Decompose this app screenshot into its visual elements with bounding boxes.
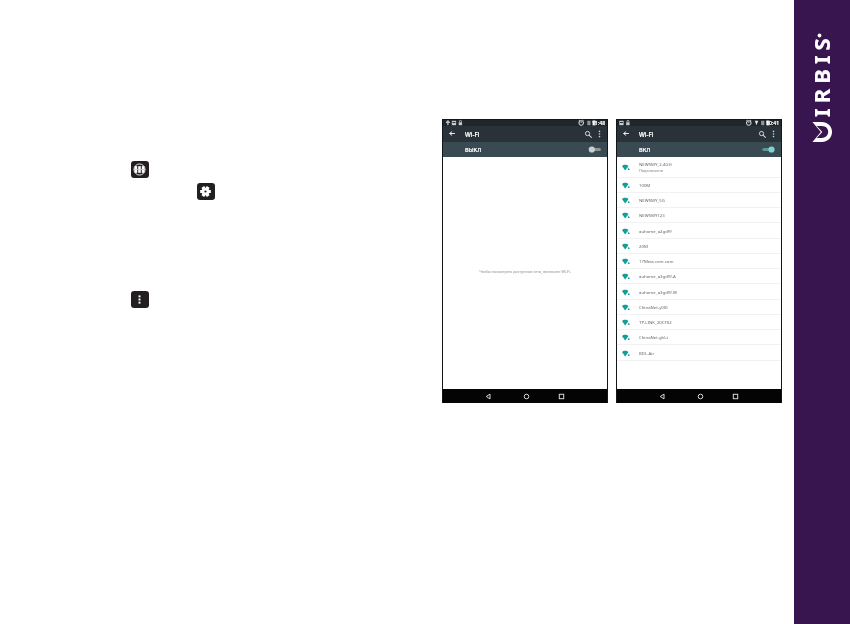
- button[interactable]: Home: [505, 389, 547, 403]
- staticText: 100M: [639, 182, 651, 188]
- staticText: Подключено: [639, 168, 664, 173]
- button[interactable]: ChinaNet.ghLt: [617, 330, 781, 344]
- button[interactable]: Turn off Wi-Fi: [757, 142, 781, 157]
- staticText: Wi-Fi: [639, 130, 654, 138]
- button[interactable]: 17Meia.com.com: [617, 254, 781, 268]
- staticText: BDL-Air: [639, 350, 655, 356]
- staticText: ChinaNet-y00I: [639, 304, 668, 310]
- button[interactable]: Recent apps: [540, 389, 582, 403]
- button[interactable]: Apps: [131, 161, 149, 178]
- button[interactable]: Settings: [197, 183, 215, 200]
- button[interactable]: ChinaNet-y00I: [617, 300, 781, 314]
- button[interactable]: More options: [131, 291, 149, 308]
- staticText: ВЫКЛ: [465, 146, 482, 154]
- staticText: Чтобы посмотреть доступные сети, включит…: [479, 269, 571, 274]
- button[interactable]: NEWSMY_5G: [617, 193, 781, 207]
- button[interactable]: Back: [641, 389, 683, 403]
- button[interactable]: Back: [443, 126, 460, 142]
- staticText: IRBIS: [806, 33, 836, 117]
- button[interactable]: BDL-Air: [617, 345, 781, 360]
- staticText: ChinaNet.ghLt: [639, 334, 669, 340]
- button[interactable]: Recent apps: [714, 389, 756, 403]
- button[interactable]: auhome_a3gdYf-A: [617, 269, 781, 283]
- button[interactable]: TP-LINK_20CF02: [617, 315, 781, 329]
- button[interactable]: Back: [467, 389, 509, 403]
- staticText: NEWSMY_2.4GH: [639, 161, 672, 167]
- staticText: TP-LINK_20CF02: [639, 319, 672, 325]
- staticText: auhome_a2gdYf: [639, 228, 672, 234]
- button[interactable]: auhome_a2gdYf: [617, 223, 781, 238]
- button[interactable]: More options: [769, 126, 778, 142]
- staticText: 11:48: [592, 120, 606, 126]
- button[interactable]: Search: [753, 126, 766, 142]
- button[interactable]: Back: [617, 126, 634, 142]
- staticText: NEWSMY_5G: [639, 197, 665, 203]
- button[interactable]: 100M: [617, 178, 781, 192]
- button[interactable]: 20M: [617, 239, 781, 253]
- button[interactable]: More options: [595, 126, 604, 142]
- staticText: 10:41: [766, 120, 780, 126]
- staticText: 17Meia.com.com: [639, 258, 674, 264]
- button[interactable]: auhome_a3gdYf-W: [617, 284, 781, 299]
- button[interactable]: NEWSMY_2.4GH: [617, 157, 781, 177]
- button[interactable]: Search: [579, 126, 592, 142]
- staticText: auhome_a3gdYf-A: [639, 273, 676, 279]
- button[interactable]: Home: [679, 389, 721, 403]
- staticText: 20M: [639, 243, 648, 249]
- button[interactable]: Turn on Wi-Fi: [583, 142, 607, 157]
- button[interactable]: NEWSMY123: [617, 208, 781, 222]
- staticText: NEWSMY123: [639, 212, 665, 218]
- staticText: auhome_a3gdYf-W: [639, 289, 678, 295]
- staticText: ВКЛ: [639, 146, 651, 154]
- staticText: Wi-Fi: [465, 130, 480, 138]
